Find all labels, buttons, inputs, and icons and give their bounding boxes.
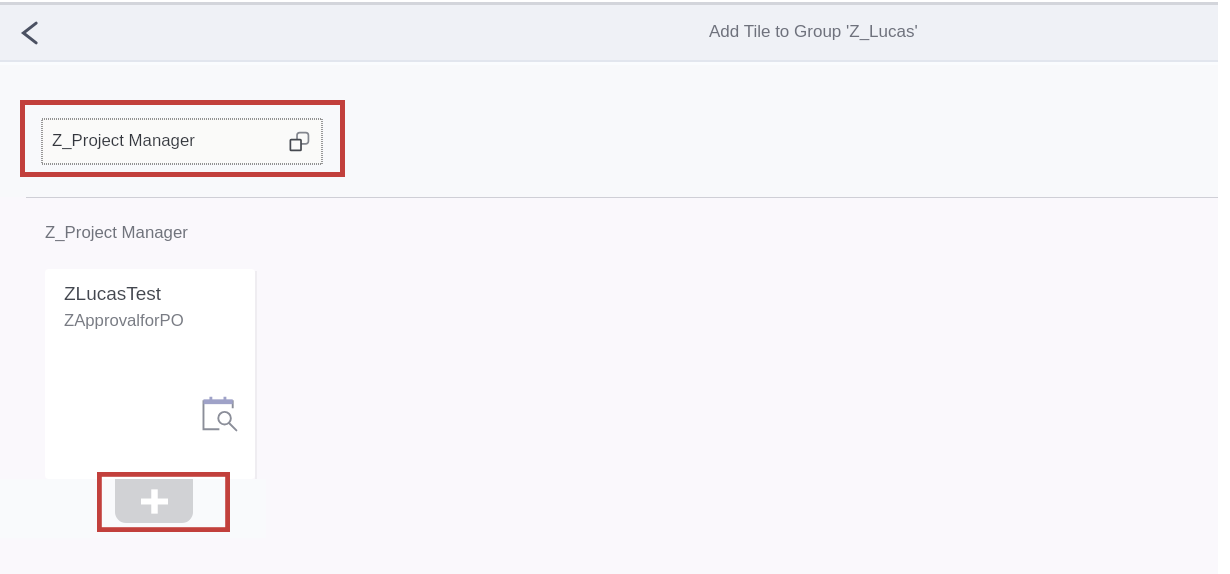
button[interactable]: Copy group — [285, 127, 313, 155]
staticText: Z_Project Manager — [52, 131, 195, 150]
button[interactable]: ZLucasTest — [45, 269, 255, 479]
staticText: Add Tile to Group 'Z_Lucas' — [709, 22, 918, 41]
staticText: ZApprovalforPO — [64, 311, 184, 330]
staticText: ZLucasTest — [64, 283, 162, 304]
staticText: Z_Project Manager — [45, 223, 188, 242]
button[interactable]: Back — [7, 10, 51, 54]
button[interactable]: Z_Project Manager — [42, 119, 322, 164]
button[interactable]: Add tile — [115, 479, 193, 523]
